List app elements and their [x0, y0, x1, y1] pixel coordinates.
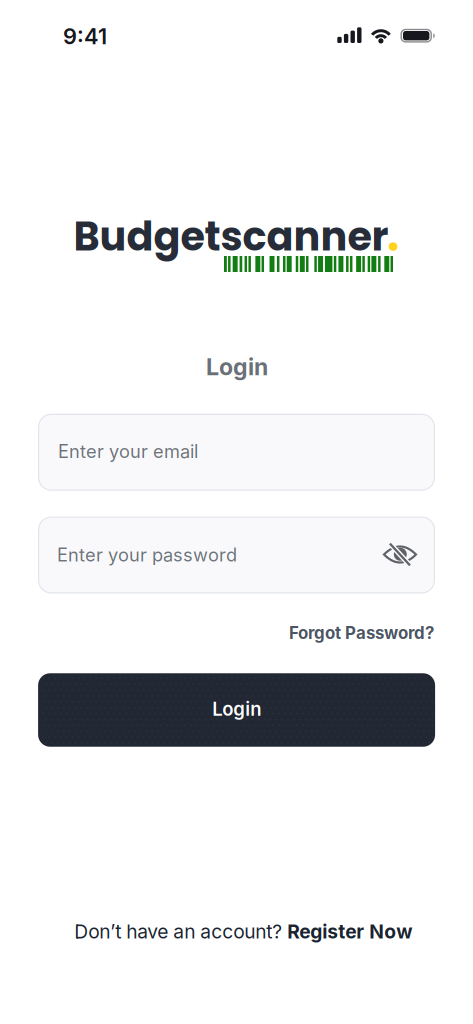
staticText: Budgetscanner: [73, 209, 388, 264]
staticText: Don’t have an account? Register Now: [74, 920, 412, 943]
staticText: Enter your password: [57, 544, 237, 566]
staticText: Login: [212, 698, 261, 720]
staticText: Enter your email: [58, 440, 198, 462]
staticText: Forgot Password?: [289, 623, 434, 643]
staticText: Login: [206, 353, 268, 381]
staticText: 9:41: [63, 23, 107, 50]
